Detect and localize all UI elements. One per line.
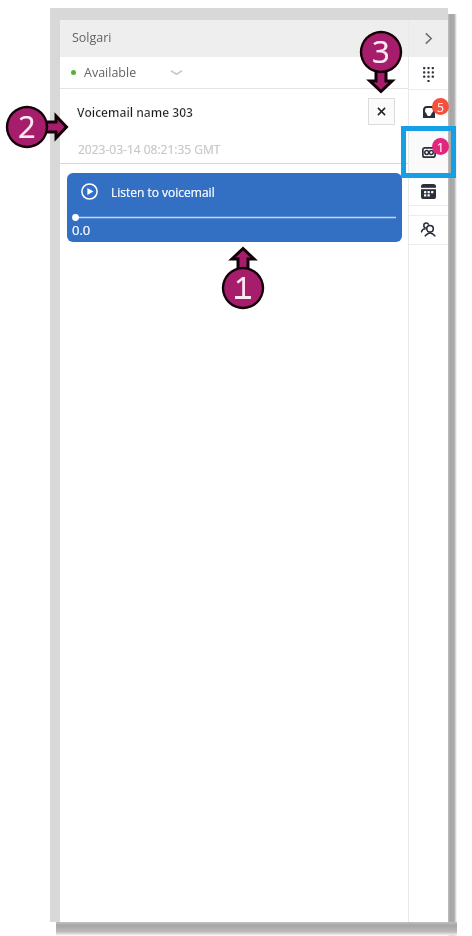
staticText: 3: [372, 30, 390, 72]
staticText: Voicemail name 303: [77, 104, 193, 120]
staticText: 5: [437, 99, 444, 115]
staticText: Listen to voicemail: [111, 184, 215, 200]
button[interactable]: Dialpad: [409, 58, 448, 90]
button[interactable]: Solgari: [60, 20, 408, 57]
button[interactable]: Inbox: [409, 94, 448, 130]
button[interactable]: Voicemail: [409, 130, 448, 174]
button[interactable]: Expand: [409, 20, 448, 57]
staticText: Available: [84, 64, 137, 81]
button[interactable]: Listen to voicemail: [67, 173, 402, 242]
staticText: Solgari: [72, 29, 112, 46]
button[interactable]: Calendar: [409, 176, 448, 207]
staticText: 1: [437, 139, 444, 155]
staticText: 0.0: [72, 221, 91, 239]
staticText: 2023-03-14 08:21:35 GMT: [78, 141, 221, 157]
button[interactable]: Close: [368, 98, 395, 125]
staticText: 2: [18, 105, 36, 147]
staticText: 1: [234, 266, 252, 308]
button[interactable]: Contacts: [409, 215, 448, 244]
button[interactable]: Available: [60, 57, 408, 88]
